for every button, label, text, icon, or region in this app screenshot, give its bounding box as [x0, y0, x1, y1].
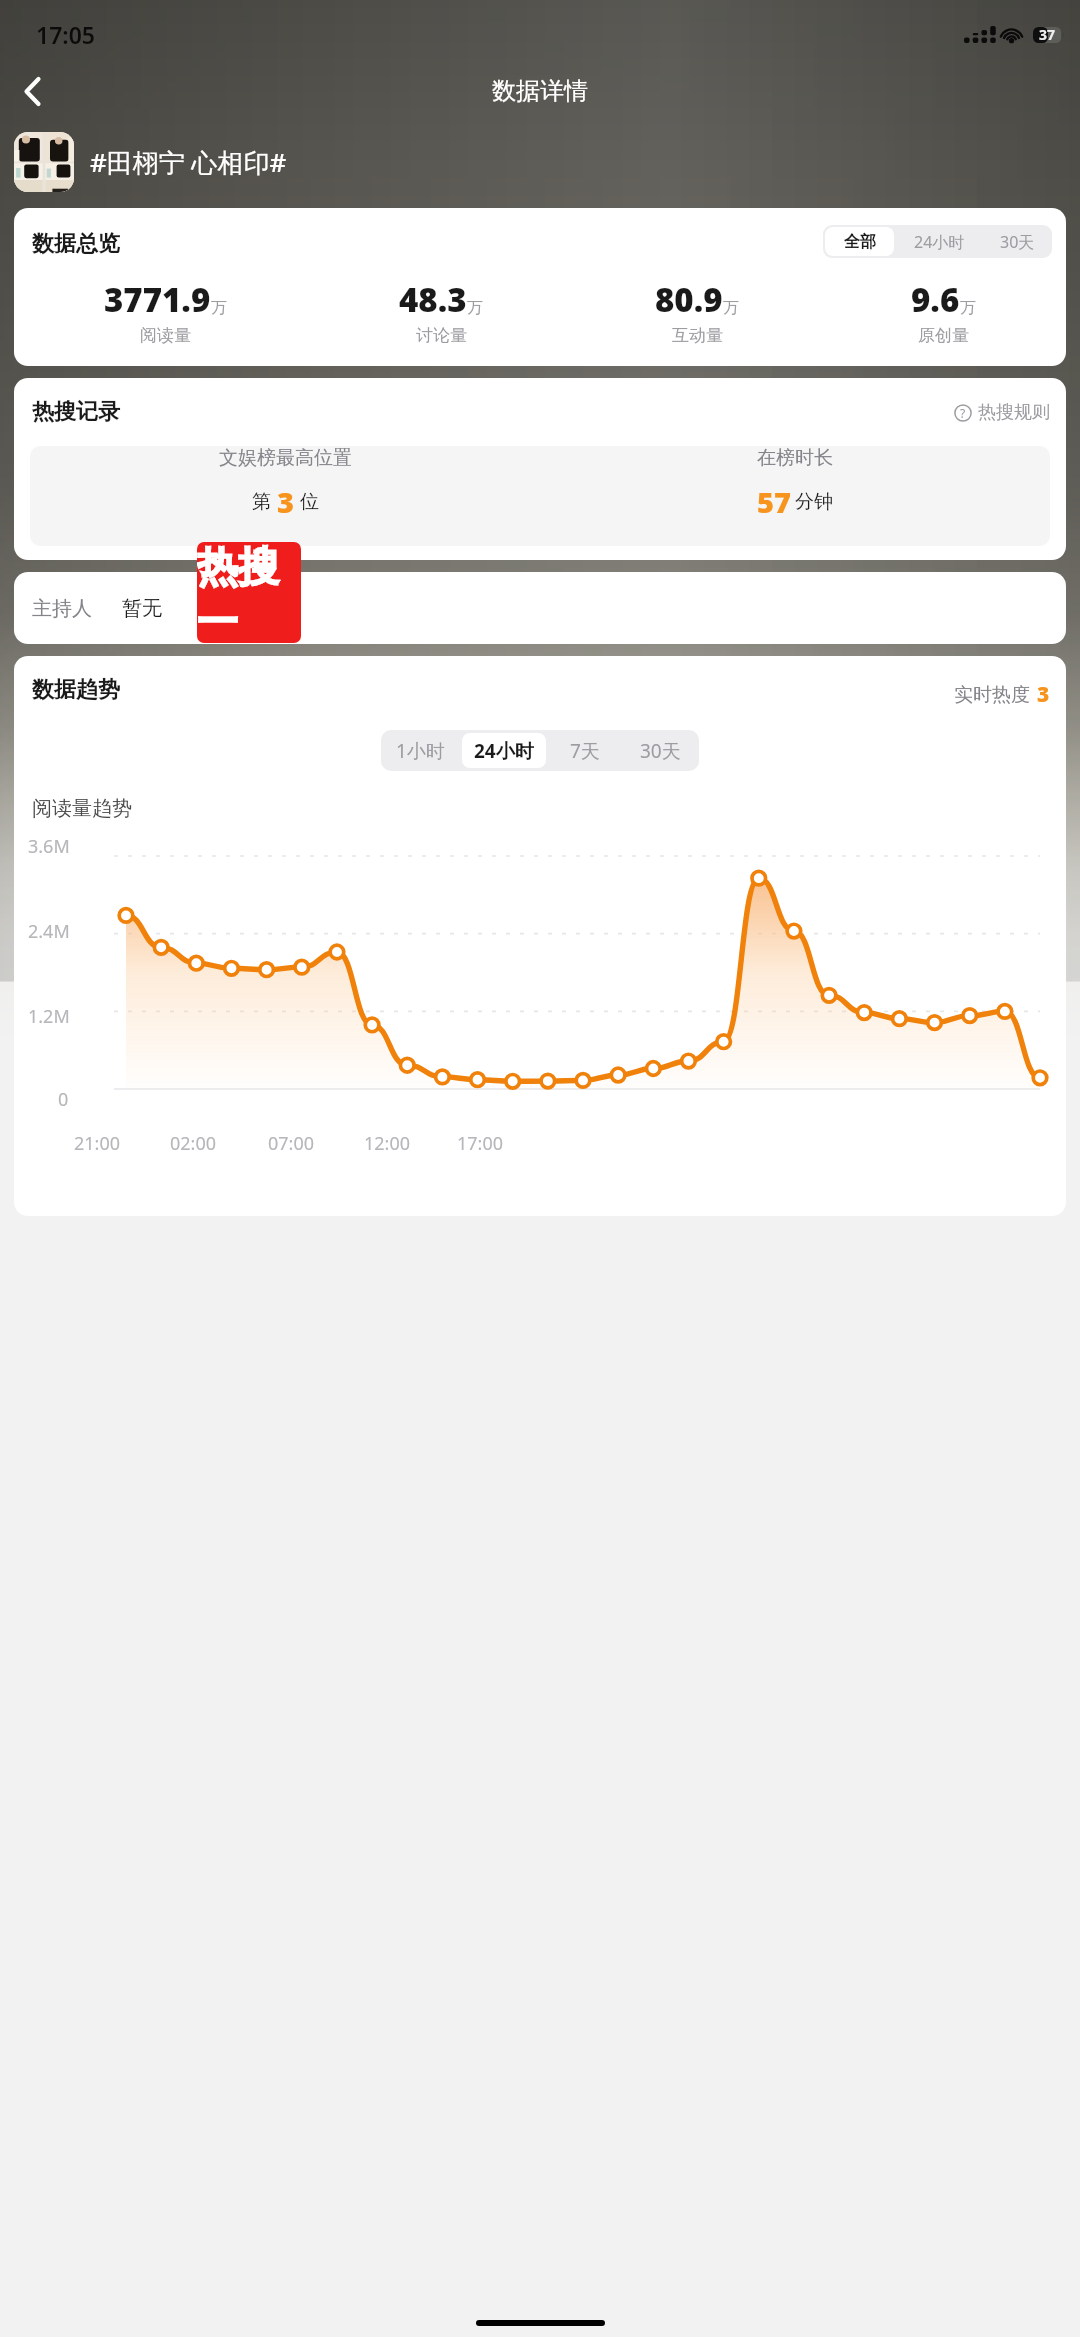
button[interactable]: #田栩宁 心相印#: [14, 132, 1066, 192]
button[interactable]: 30天: [984, 227, 1050, 256]
staticText: ?: [960, 405, 966, 421]
staticText: 万: [723, 298, 739, 318]
staticText: 30天: [640, 738, 681, 764]
staticText: 万: [211, 298, 227, 318]
staticText: 实时热度: [954, 683, 1030, 707]
staticText: 21:00: [74, 1131, 121, 1156]
button[interactable]: 7天: [552, 733, 618, 768]
staticText: 07:00: [268, 1131, 315, 1156]
staticText: 万: [960, 298, 976, 318]
staticText: 17:05: [36, 19, 95, 50]
staticText: 24小时: [474, 738, 534, 764]
staticText: 80.9: [655, 277, 723, 322]
staticText: 热搜一: [197, 542, 301, 643]
staticText: 在榜时长: [757, 446, 833, 470]
button[interactable]: ?: [954, 401, 1050, 424]
staticText: 万: [467, 298, 483, 318]
staticText: 1小时: [396, 738, 445, 764]
button[interactable]: 24小时: [898, 227, 980, 256]
staticText: 7天: [570, 738, 600, 764]
staticText: 热搜规则: [978, 401, 1050, 424]
staticText: 数据趋势: [32, 676, 120, 704]
staticText: 数据详情: [492, 76, 588, 106]
staticText: 讨论量: [416, 325, 467, 346]
staticText: 暂无: [122, 596, 162, 621]
button[interactable]: 24小时: [462, 733, 546, 768]
staticText: 阅读量趋势: [32, 796, 132, 821]
button[interactable]: 30天: [624, 733, 696, 768]
button[interactable]: 1小时: [384, 733, 456, 768]
button[interactable]: 主持人: [14, 572, 1066, 644]
staticText: 3771.9: [104, 277, 211, 322]
staticText: 12:00: [364, 1131, 411, 1156]
staticText: 第: [252, 490, 271, 514]
staticText: 3.6M: [28, 834, 70, 859]
staticText: 热搜记录: [32, 398, 120, 426]
staticText: 2.4M: [28, 919, 70, 944]
button[interactable]: 热搜一: [197, 542, 301, 643]
button[interactable]: 全部: [825, 227, 894, 256]
button[interactable]: Back: [8, 67, 56, 115]
staticText: 阅读量: [140, 325, 191, 346]
staticText: 数据总览: [32, 230, 120, 258]
staticText: 文娱榜最高位置: [219, 446, 352, 470]
staticText: 02:00: [170, 1131, 217, 1156]
staticText: 分钟: [795, 490, 833, 514]
staticText: 48.3: [399, 277, 467, 322]
staticText: 位: [300, 490, 319, 514]
staticText: 3: [277, 482, 294, 521]
staticText: 全部: [844, 232, 876, 252]
staticText: 24小时: [914, 231, 965, 253]
staticText: 30天: [1000, 231, 1035, 253]
staticText: 37: [1039, 25, 1056, 44]
staticText: 互动量: [672, 325, 723, 346]
staticText: 主持人: [32, 596, 92, 621]
staticText: 3: [1037, 680, 1050, 709]
staticText: #田栩宁 心相印#: [90, 144, 287, 180]
staticText: 0: [58, 1087, 69, 1112]
staticText: 57: [757, 482, 791, 521]
staticText: 9.6: [911, 277, 960, 322]
staticText: 17:00: [457, 1131, 504, 1156]
staticText: 1.2M: [28, 1004, 70, 1029]
staticText: 原创量: [918, 325, 969, 346]
